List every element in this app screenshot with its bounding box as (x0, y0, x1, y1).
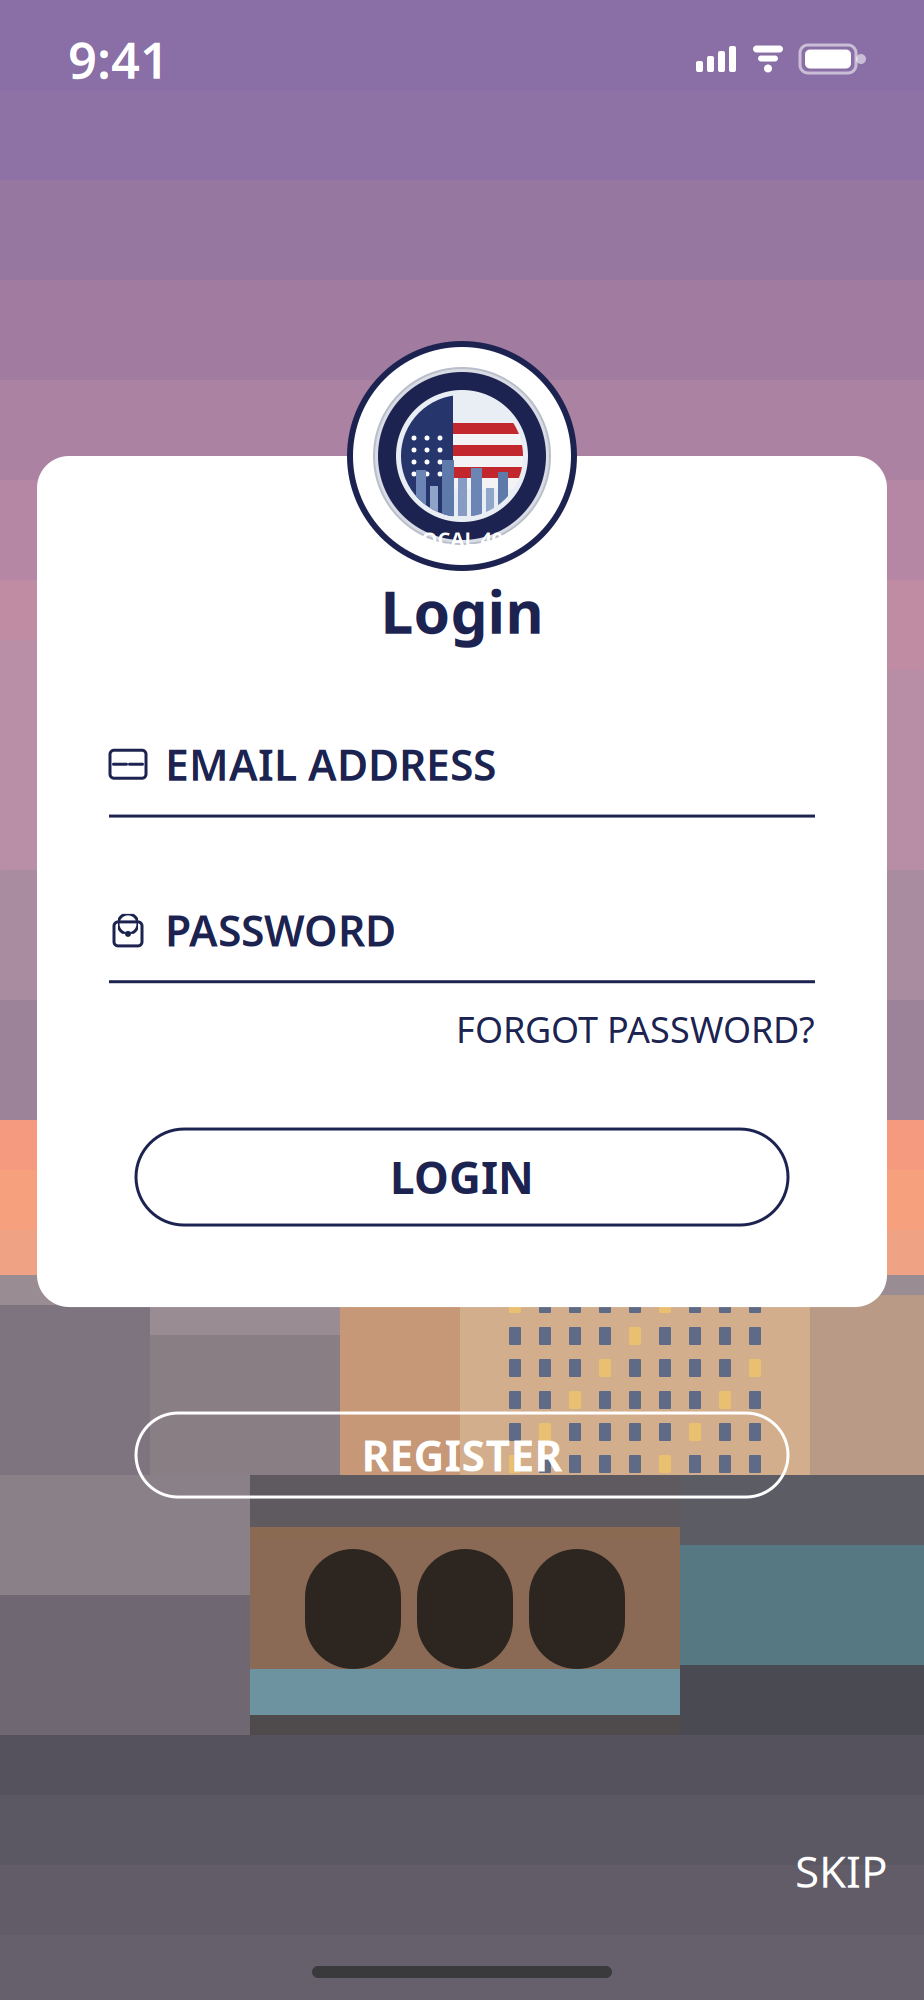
button[interactable]: SKIP (777, 1830, 906, 1912)
button[interactable]: FORGOT PASSWORD? (456, 1005, 815, 1053)
staticText: 9:41 (68, 25, 169, 93)
staticText: SKIP (795, 1842, 888, 1900)
button[interactable]: REGISTER (136, 1413, 788, 1497)
staticText: LOCAL 401 (410, 525, 513, 552)
staticText: LOGIN (390, 1148, 534, 1206)
staticText: EMAIL ADDRESS (165, 736, 496, 793)
staticText: FORGOT PASSWORD? (456, 1005, 815, 1053)
staticText: PASSWORD (165, 902, 396, 958)
button[interactable]: LOGIN (136, 1129, 788, 1225)
staticText: REGISTER (361, 1427, 562, 1483)
staticText: Login (380, 572, 543, 650)
